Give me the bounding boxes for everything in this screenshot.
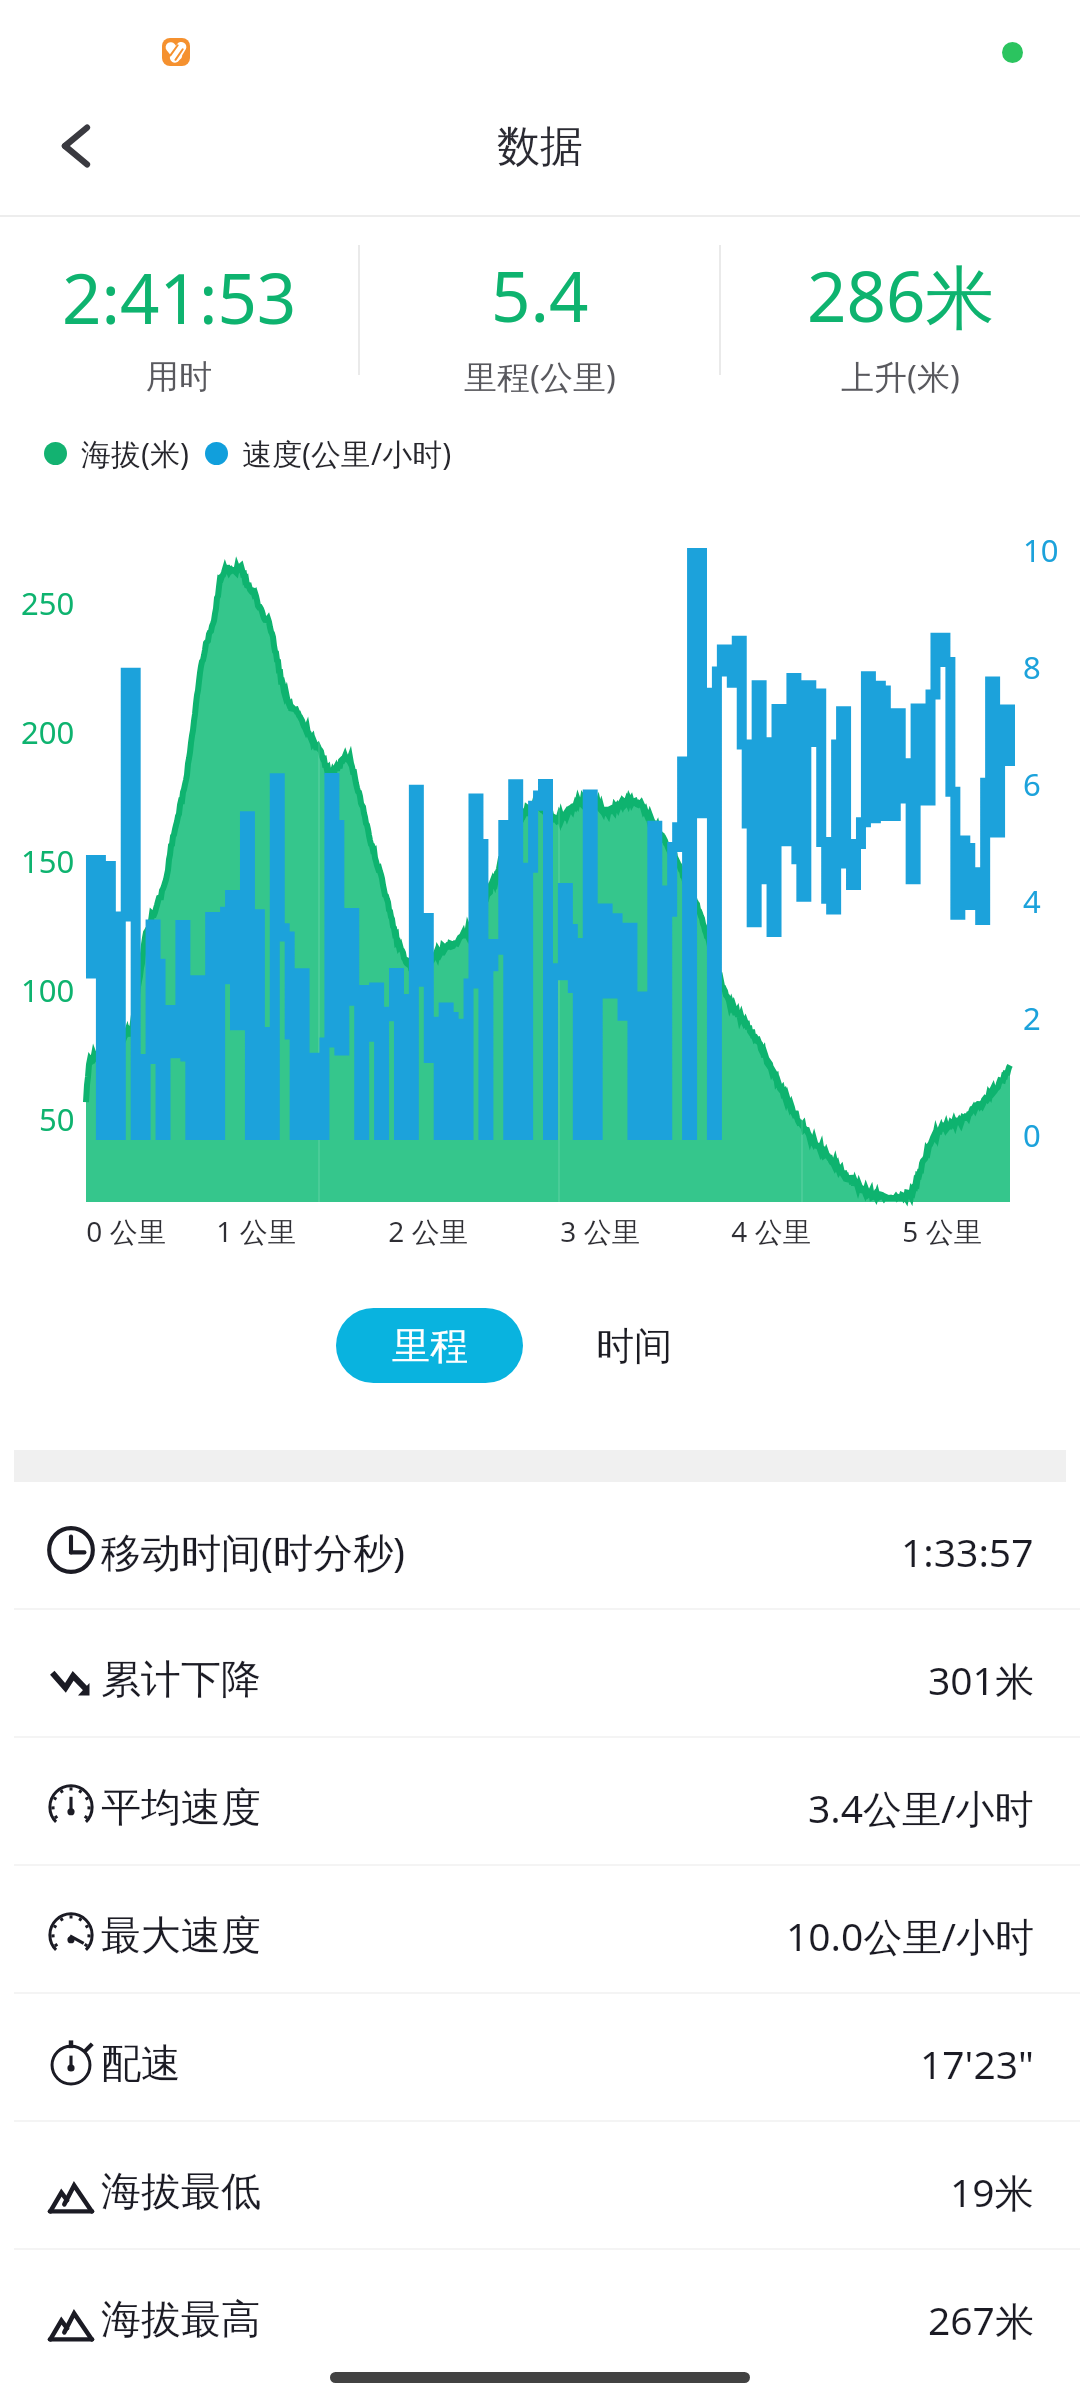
button[interactable]: 配速 <box>0 1994 1080 2120</box>
staticText: 250 <box>21 582 75 624</box>
staticText: 1:33:57 <box>901 1525 1034 1578</box>
button[interactable]: 时间 <box>580 1308 688 1383</box>
staticText: 5 公里 <box>852 1212 1032 1250</box>
button[interactable]: 里程 <box>336 1308 523 1383</box>
staticText: 0 <box>1023 1114 1041 1156</box>
staticText: 6 <box>1023 763 1041 805</box>
staticText: 最大速度 <box>101 1910 261 1960</box>
button[interactable]: 累计下降 <box>0 1610 1080 1736</box>
staticText: 100 <box>21 969 75 1011</box>
button[interactable]: 最大速度 <box>0 1866 1080 1992</box>
staticText: 267米 <box>928 2293 1034 2346</box>
staticText: 1 公里 <box>166 1212 346 1250</box>
staticText: 3 公里 <box>510 1212 690 1250</box>
staticText: 4 公里 <box>681 1212 861 1250</box>
staticText: 10 <box>1023 529 1059 571</box>
staticText: 速度(公里/小时) <box>242 433 452 474</box>
staticText: 数据 <box>497 120 583 174</box>
button[interactable]: 平均速度 <box>0 1738 1080 1864</box>
staticText: 海拔最高 <box>101 2294 261 2344</box>
staticText: 配速 <box>101 2038 181 2088</box>
staticText: 海拔最低 <box>101 2166 261 2216</box>
staticText: 0 公里 <box>36 1212 216 1250</box>
staticText: 19米 <box>950 2165 1034 2218</box>
staticText: 2:41:53 <box>62 250 297 344</box>
staticText: 2 <box>1023 997 1041 1039</box>
staticText: 上升(米) <box>841 354 960 399</box>
staticText: 50 <box>39 1098 75 1140</box>
staticText: 用时 <box>146 356 212 398</box>
staticText: 5.4 <box>491 248 589 342</box>
staticText: 10.0公里/小时 <box>786 1909 1034 1962</box>
staticText: 时间 <box>596 1322 672 1370</box>
button[interactable]: 海拔最低 <box>0 2122 1080 2248</box>
staticText: 4 <box>1023 880 1041 922</box>
staticText: 301米 <box>928 1653 1034 1706</box>
staticText: 3.4公里/小时 <box>808 1781 1034 1834</box>
staticText: 200 <box>21 711 75 753</box>
button[interactable]: Back <box>28 98 124 194</box>
staticText: 286米 <box>807 248 995 342</box>
button[interactable]: 移动时间(时分秒) <box>0 1482 1080 1608</box>
staticText: 2 公里 <box>338 1212 518 1250</box>
staticText: 150 <box>21 840 75 882</box>
button[interactable]: 海拔最高 <box>0 2250 1080 2376</box>
staticText: 平均速度 <box>101 1782 261 1832</box>
staticText: 海拔(米) <box>81 433 189 474</box>
staticText: 里程(公里) <box>464 354 616 399</box>
staticText: 17'23" <box>920 2037 1034 2090</box>
staticText: 里程 <box>392 1322 468 1370</box>
staticText: 移动时间(时分秒) <box>101 1524 405 1579</box>
staticText: 累计下降 <box>101 1654 261 1704</box>
staticText: 8 <box>1023 646 1041 688</box>
